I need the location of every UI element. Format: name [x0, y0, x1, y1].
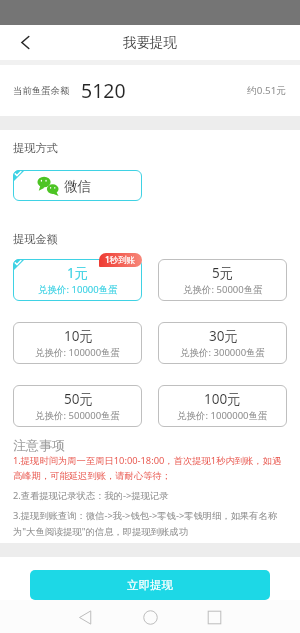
button[interactable]: 30元	[158, 322, 287, 364]
staticText: 1元	[67, 264, 89, 282]
button[interactable]: Home	[137, 604, 164, 631]
button[interactable]: 立即提现	[30, 570, 270, 600]
staticText: 兑换价: 500000鱼蛋	[35, 409, 121, 422]
staticText: 5元	[212, 264, 234, 282]
button[interactable]: 50元	[13, 385, 142, 427]
button[interactable]: 100元	[158, 385, 287, 427]
staticText: 兑换价: 100000鱼蛋	[35, 346, 121, 359]
staticText: 约0.51元	[247, 84, 287, 97]
button[interactable]: 1元	[13, 259, 142, 301]
staticText: 5120	[81, 77, 126, 104]
staticText: 10元	[64, 327, 93, 345]
staticText: 50元	[64, 390, 93, 408]
button[interactable]: 5元	[158, 259, 287, 301]
button[interactable]: 10元	[13, 322, 142, 364]
staticText: 1.提现时间为周一至周日10:00-18:00，首次提现1秒内到账，如遇高峰期，…	[13, 454, 287, 482]
staticText: 兑换价: 1000000鱼蛋	[177, 409, 268, 422]
staticText: 1秒到账	[105, 254, 136, 266]
staticText: 兑换价: 50000鱼蛋	[183, 283, 263, 296]
staticText: 提现方式	[13, 141, 58, 155]
staticText: 我要提现	[123, 34, 177, 51]
staticText: 兑换价: 10000鱼蛋	[38, 283, 118, 296]
button[interactable]: Back	[0, 25, 50, 60]
staticText: 100元	[204, 390, 241, 408]
staticText: 立即提现	[127, 578, 173, 592]
staticText: 提现金额	[13, 232, 58, 246]
staticText: 兑换价: 300000鱼蛋	[180, 346, 266, 359]
button[interactable]: Back	[72, 604, 99, 631]
staticText: 注意事项	[13, 437, 65, 453]
staticText: 当前鱼蛋余额	[13, 85, 70, 97]
button[interactable]: Recents	[201, 604, 228, 631]
staticText: 微信	[64, 178, 91, 195]
button[interactable]: 微信	[13, 170, 142, 201]
staticText: 3.提现到账查询：微信->我->钱包->零钱->零钱明细，如果有名称为"大鱼阅读…	[13, 509, 287, 537]
staticText: 30元	[209, 327, 238, 345]
staticText: 2.查看提现记录状态：我的->提现记录	[13, 489, 169, 502]
